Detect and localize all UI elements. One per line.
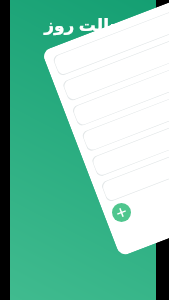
button[interactable]: Add [112, 203, 131, 222]
button[interactable]: لیست خریدها [41, 0, 169, 257]
button[interactable] [81, 86, 169, 152]
button[interactable] [62, 36, 169, 102]
staticText: حالت روز [44, 13, 122, 36]
button[interactable] [100, 136, 169, 203]
button[interactable] [71, 61, 169, 127]
button[interactable] [91, 111, 169, 177]
button[interactable] [52, 10, 169, 77]
